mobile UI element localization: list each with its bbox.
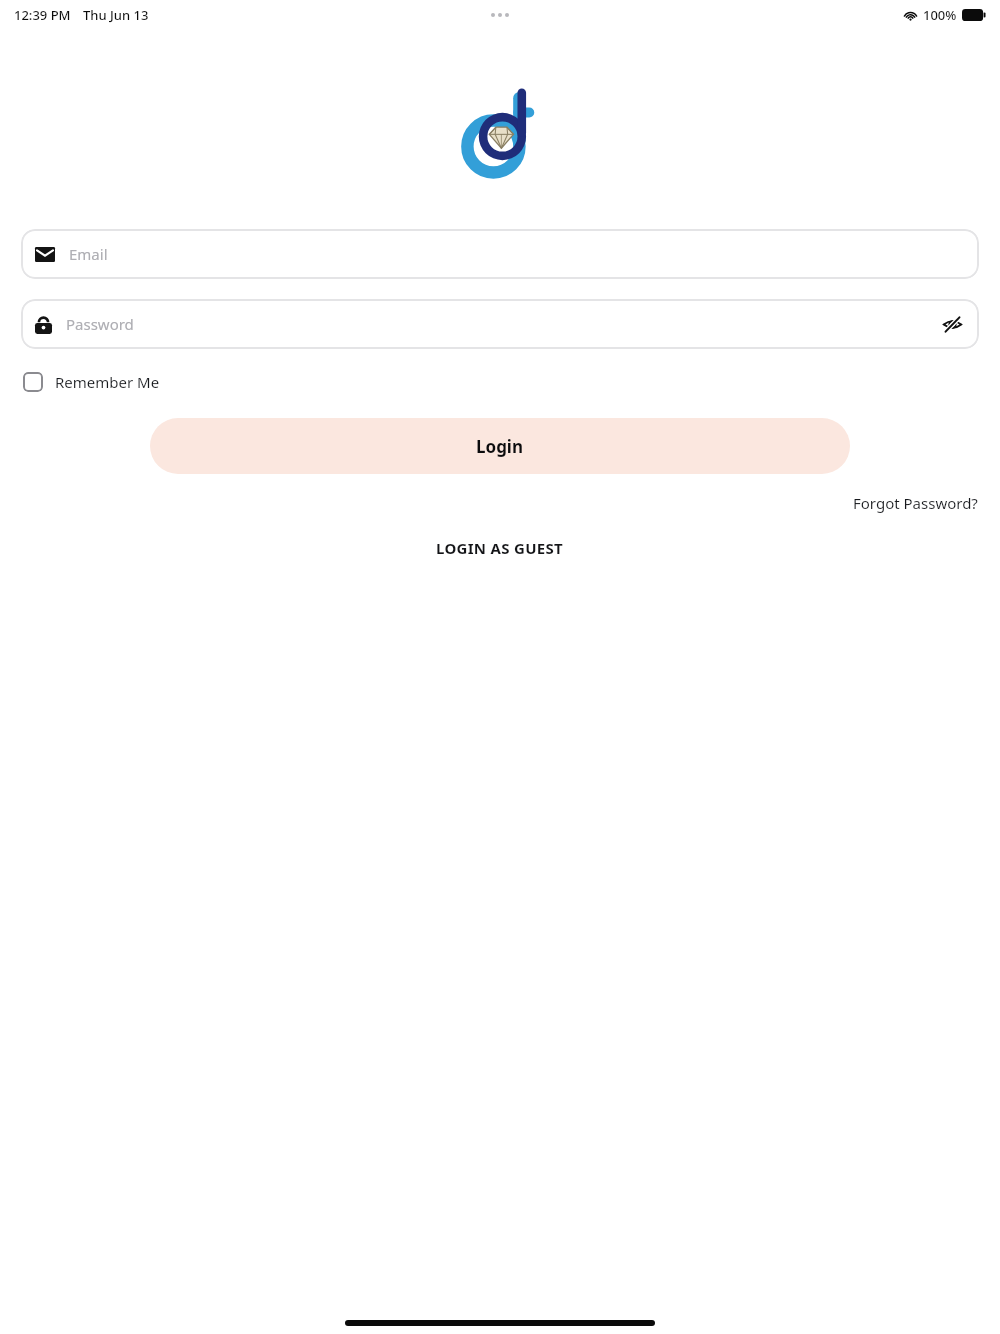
button[interactable]: Show password: [936, 308, 969, 341]
staticText: Email: [69, 244, 108, 264]
staticText: Remember Me: [55, 372, 160, 392]
staticText: Login: [476, 435, 524, 458]
staticText: 100%: [923, 6, 957, 24]
button[interactable]: Password: [21, 299, 979, 349]
button[interactable]: Remember Me: [21, 368, 162, 396]
button[interactable]: Forgot Password?: [849, 490, 982, 516]
staticText: LOGIN AS GUEST: [436, 538, 564, 558]
button[interactable]: Login: [150, 418, 850, 474]
staticText: Password: [66, 314, 134, 334]
staticText: 12:39 PM: [14, 6, 71, 24]
other: Email: [35, 247, 55, 262]
staticText: Thu Jun 13: [83, 6, 149, 24]
button[interactable]: LOGIN AS GUEST: [428, 534, 572, 562]
other: Password: [35, 315, 52, 334]
button[interactable]: Email: [21, 229, 979, 279]
staticText: Forgot Password?: [853, 493, 978, 513]
